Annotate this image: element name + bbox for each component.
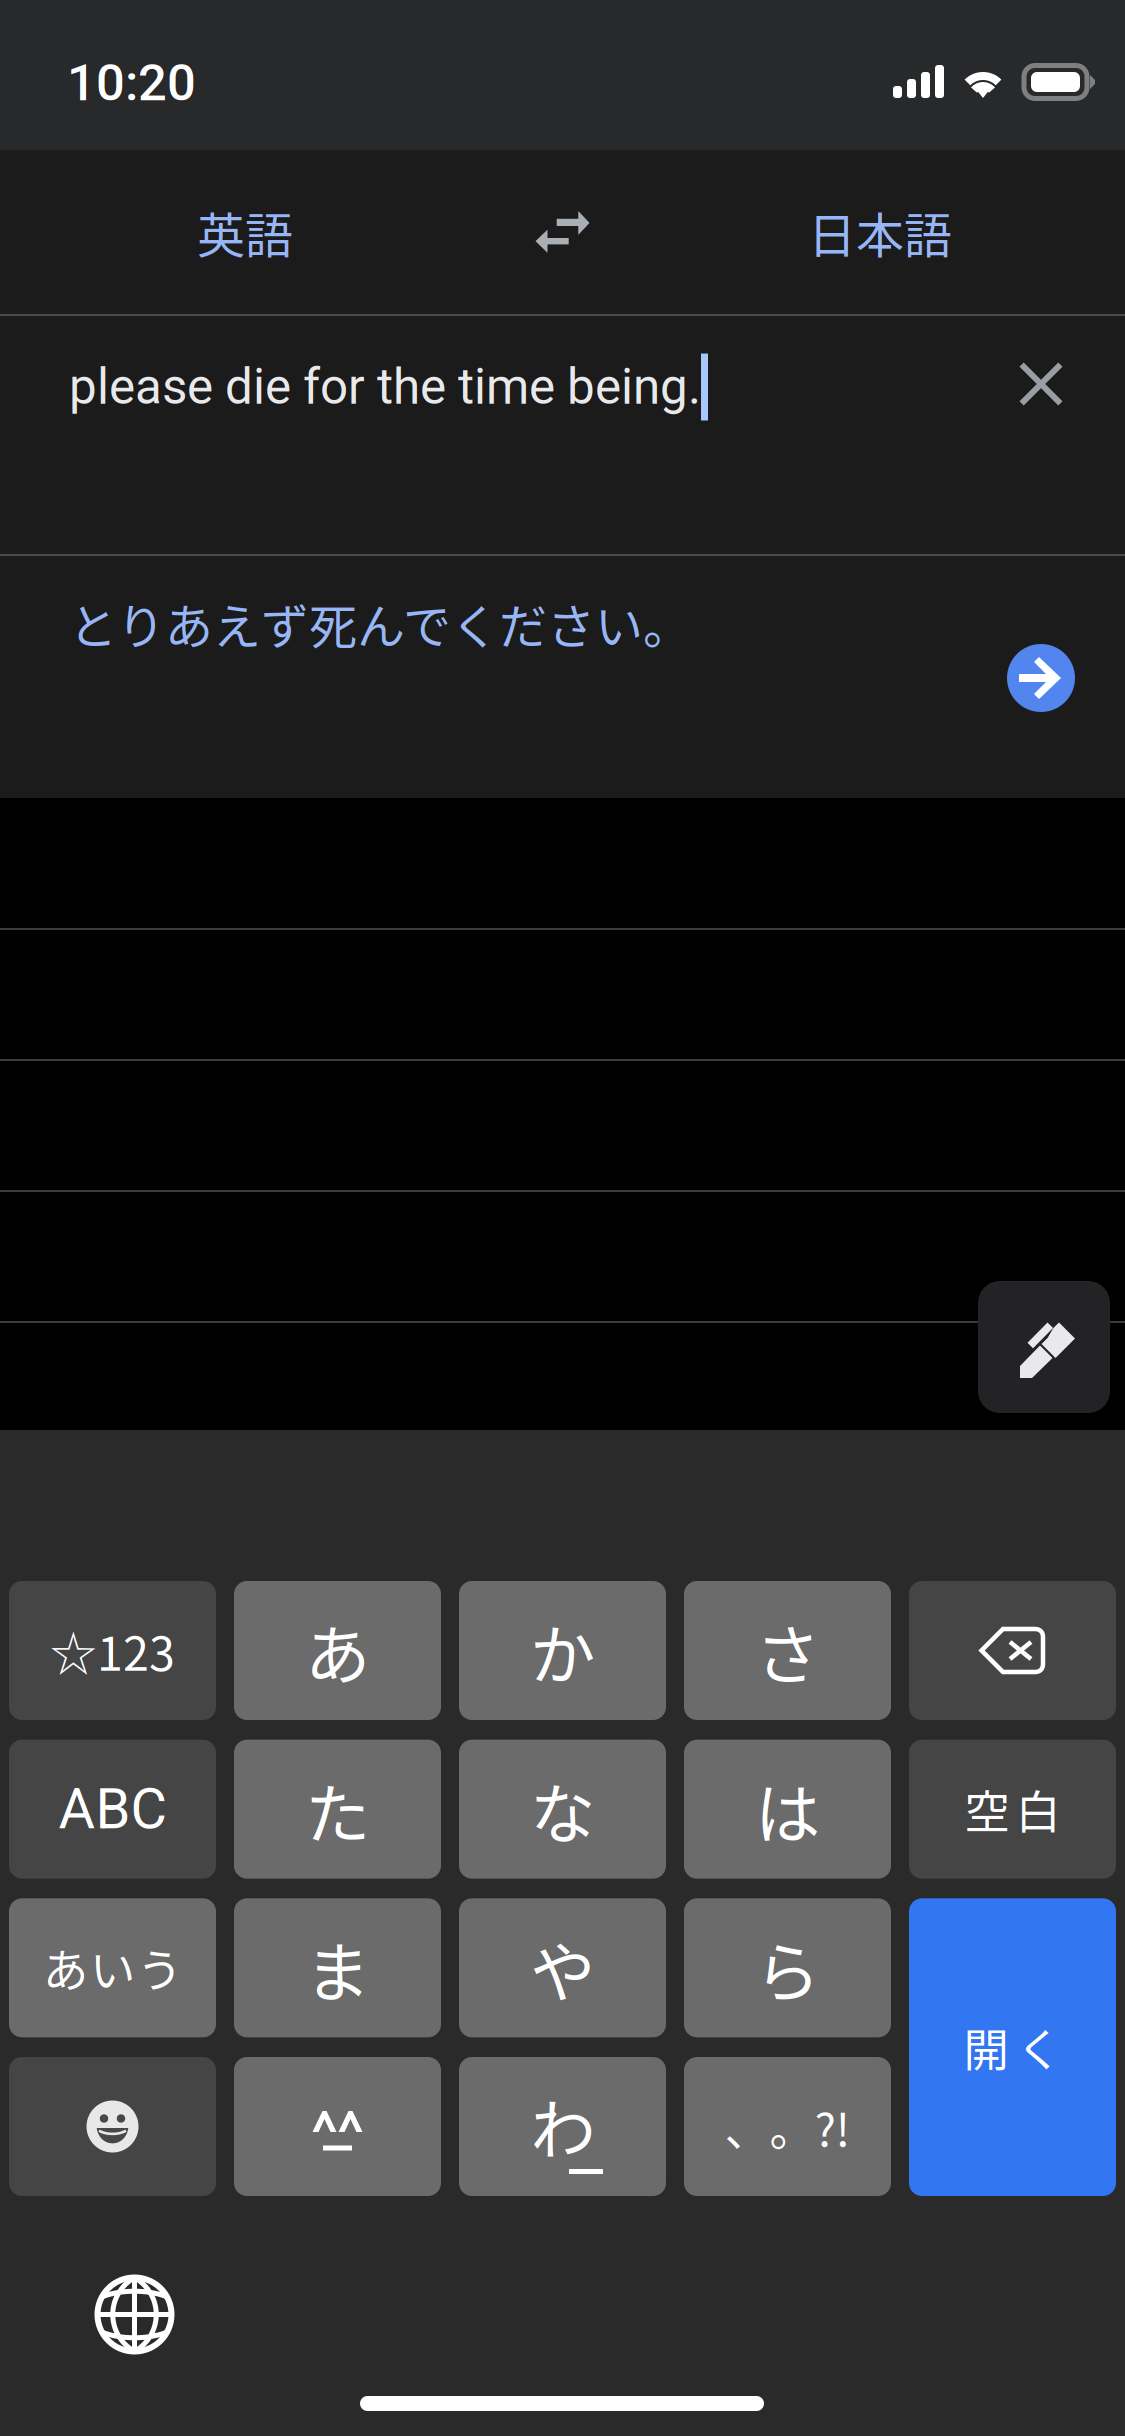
button[interactable]: わ <box>459 2057 666 2196</box>
staticText: あいう <box>43 1935 182 2001</box>
button[interactable]: Clear text <box>986 329 1096 439</box>
staticText: は <box>755 1762 820 1856</box>
staticText: か <box>530 1603 595 1698</box>
staticText: な <box>530 1762 595 1856</box>
button[interactable]: ま <box>234 1898 441 2037</box>
staticText: ま <box>305 1920 370 2015</box>
staticText: 開く <box>963 2014 1061 2080</box>
button[interactable]: 、。?! <box>684 2057 891 2196</box>
staticText: 英語 <box>197 197 293 267</box>
button[interactable]: Next keyboard <box>95 2275 174 2354</box>
button[interactable] <box>9 2057 216 2196</box>
staticText: や <box>530 1920 595 2015</box>
button[interactable]: あ <box>234 1581 441 1720</box>
staticText: please die for the time being. <box>69 358 701 416</box>
button[interactable]: あいう <box>9 1898 216 2037</box>
button[interactable]: Handwriting input <box>978 1281 1110 1413</box>
button[interactable]: さ <box>684 1581 891 1720</box>
button[interactable]: 空白 <box>909 1740 1116 1879</box>
button[interactable]: Swap languages <box>480 150 645 314</box>
staticText: 空白 <box>964 1776 1060 1842</box>
staticText: ☆123 <box>50 1617 175 1684</box>
button[interactable]: な <box>459 1740 666 1879</box>
button[interactable]: ☆123 <box>9 1581 216 1720</box>
button[interactable]: Translate <box>1007 644 1075 712</box>
button[interactable]: 日本語 <box>660 150 1100 314</box>
staticText: 、。?! <box>724 2094 850 2159</box>
button[interactable] <box>909 1581 1116 1720</box>
staticText: ABC <box>58 1776 166 1842</box>
button[interactable]: は <box>684 1740 891 1879</box>
staticText: 10:20 <box>67 53 196 113</box>
button[interactable]: 英語 <box>25 150 465 314</box>
staticText: た <box>305 1762 370 1856</box>
staticText: ら <box>755 1920 820 2015</box>
button[interactable]: ら <box>684 1898 891 2037</box>
button[interactable]: 開く <box>909 1898 1116 2196</box>
button[interactable]: た <box>234 1740 441 1879</box>
staticText: さ <box>755 1603 820 1698</box>
staticText: とりあえず死んでください。 <box>69 588 691 658</box>
button[interactable]: ABC <box>9 1740 216 1879</box>
button[interactable] <box>234 2057 441 2196</box>
staticText: あ <box>305 1603 370 1698</box>
button[interactable]: か <box>459 1581 666 1720</box>
staticText: 日本語 <box>808 197 952 267</box>
button[interactable]: や <box>459 1898 666 2037</box>
staticText: わ <box>530 2078 595 2172</box>
